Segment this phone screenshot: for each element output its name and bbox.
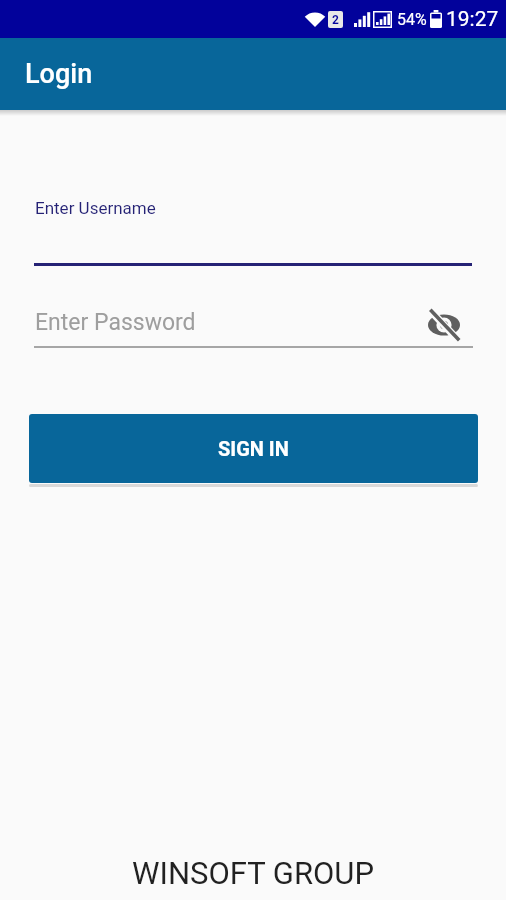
button[interactable] [34, 290, 473, 348]
button[interactable]: SIGN IN [29, 414, 478, 483]
staticText: WINSOFT GROUP [0, 855, 506, 891]
staticText: 19:27 [446, 7, 499, 32]
staticText: Login [25, 58, 93, 90]
staticText: Enter Password [35, 309, 196, 336]
staticText: SIGN IN [218, 437, 289, 460]
staticText: 54% [397, 10, 427, 29]
button[interactable] [427, 310, 461, 340]
button[interactable] [34, 192, 473, 266]
staticText: Enter Username [35, 198, 156, 218]
staticText: 2 [332, 13, 339, 27]
